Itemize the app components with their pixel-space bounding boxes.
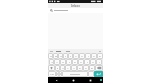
staticText: r xyxy=(65,55,66,58)
staticText: . xyxy=(91,73,92,76)
button[interactable]: d xyxy=(60,59,66,65)
staticText: o xyxy=(93,55,95,58)
staticText: y xyxy=(75,55,77,58)
button[interactable]: q xyxy=(48,53,53,59)
staticText: w xyxy=(55,55,57,58)
button[interactable]: f xyxy=(66,59,72,65)
button[interactable]: e xyxy=(58,53,63,59)
button[interactable]: l xyxy=(96,59,102,65)
button[interactable]: x xyxy=(60,65,65,71)
button[interactable]: h xyxy=(78,59,84,65)
button[interactable]: Back xyxy=(48,77,65,83)
button[interactable] xyxy=(54,49,63,53)
staticText: n xyxy=(85,67,87,70)
staticText: x xyxy=(62,67,64,70)
button[interactable]: c xyxy=(65,65,71,71)
staticText: z xyxy=(57,67,58,70)
staticText: Inbox xyxy=(71,4,80,8)
other: Search xyxy=(50,9,53,12)
button[interactable]: o xyxy=(91,53,97,59)
button[interactable]: a xyxy=(49,59,54,65)
button[interactable]: u xyxy=(79,53,85,59)
staticText: ?123 xyxy=(50,73,54,75)
button[interactable]: w xyxy=(53,53,58,59)
button[interactable]: n xyxy=(83,65,89,71)
button[interactable]: More suggestions xyxy=(98,49,102,53)
button[interactable]: v xyxy=(71,65,77,71)
button[interactable]: m xyxy=(89,65,95,71)
staticText: b xyxy=(79,67,81,70)
staticText: c xyxy=(67,67,69,70)
staticText: a xyxy=(51,61,53,64)
button[interactable]: Home xyxy=(65,77,82,83)
button[interactable] xyxy=(63,49,72,53)
staticText: f xyxy=(69,61,70,64)
button[interactable]: k xyxy=(90,59,96,65)
staticText: p xyxy=(99,55,101,58)
staticText: m xyxy=(91,67,93,70)
button[interactable]: Recent apps xyxy=(82,77,99,83)
button[interactable]: z xyxy=(55,65,60,71)
button[interactable]: Keyboard switcher xyxy=(99,77,103,83)
button[interactable]: j xyxy=(84,59,90,65)
staticText: s xyxy=(56,61,58,64)
button[interactable]: Emoji xyxy=(56,71,62,77)
button[interactable]: ?123 xyxy=(48,71,56,77)
staticText: i xyxy=(88,55,89,58)
button[interactable]: t xyxy=(68,53,73,59)
button[interactable]: i xyxy=(85,53,91,59)
staticText: j xyxy=(87,61,88,64)
button[interactable]: g xyxy=(72,59,78,65)
button[interactable]: b xyxy=(77,65,83,71)
staticText: d xyxy=(62,61,64,64)
button[interactable]: y xyxy=(73,53,79,59)
staticText: t xyxy=(70,55,71,58)
staticText: e xyxy=(60,55,62,58)
button[interactable]: Space xyxy=(62,71,88,77)
button[interactable]: Shift xyxy=(48,65,55,71)
staticText: u xyxy=(81,55,83,58)
staticText: k xyxy=(92,61,94,64)
staticText: g xyxy=(74,61,76,64)
button[interactable]: p xyxy=(97,53,103,59)
button[interactable]: Enter xyxy=(94,71,103,77)
button[interactable]: Suggestion xyxy=(49,49,54,53)
staticText: l xyxy=(99,61,100,64)
button[interactable]: r xyxy=(63,53,68,59)
staticText: q xyxy=(50,55,52,58)
button[interactable]: Backspace xyxy=(95,65,103,71)
button[interactable]: . xyxy=(88,71,94,77)
staticText: h xyxy=(80,61,82,64)
staticText: v xyxy=(73,67,75,70)
button[interactable]: Search xyxy=(48,8,103,13)
button[interactable]: s xyxy=(54,59,60,65)
